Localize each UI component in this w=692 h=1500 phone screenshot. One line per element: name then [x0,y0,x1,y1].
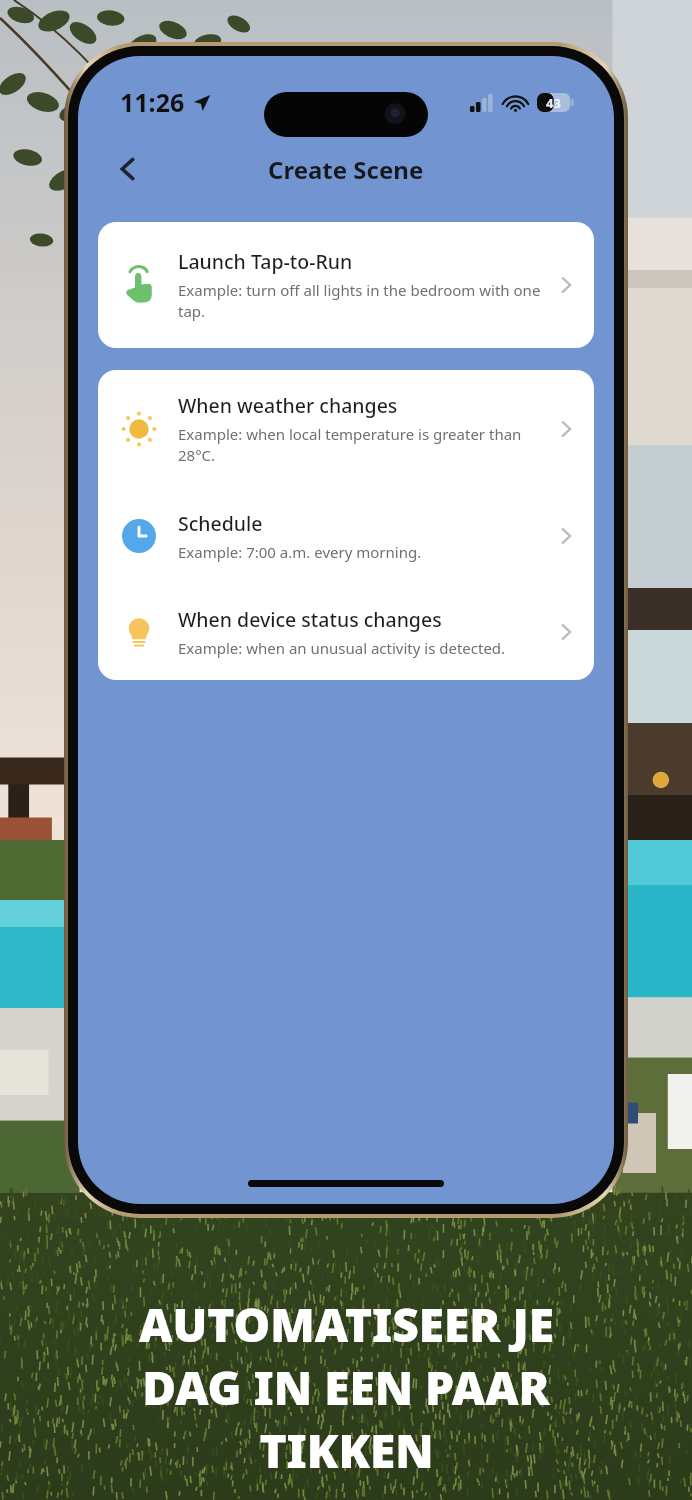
staticText: DAG IN EEN PAAR [142,1356,550,1419]
staticText: When weather changes [178,392,398,419]
button[interactable]: When device status changes [98,584,594,680]
staticText: Example: when local temperature is great… [178,424,546,466]
staticText: 43 [546,94,561,112]
staticText: Create Scene [268,153,424,186]
staticText: 11:26 [120,85,185,119]
staticText: When device status changes [178,606,442,633]
staticText: Launch Tap-to-Run [178,248,353,275]
button[interactable]: When weather changes [98,370,594,488]
staticText: Example: 7:00 a.m. every morning. [178,542,422,562]
button[interactable]: Schedule [98,488,594,584]
staticText: Example: turn off all lights in the bedr… [178,280,546,322]
staticText: TIKKEN [259,1419,434,1482]
staticText: Schedule [178,510,263,537]
staticText: AUTOMATISEER JE [139,1293,554,1356]
button[interactable]: Back [102,143,154,195]
staticText: Example: when an unusual activity is det… [178,638,506,658]
button[interactable]: Launch Tap-to-Run [98,222,594,348]
